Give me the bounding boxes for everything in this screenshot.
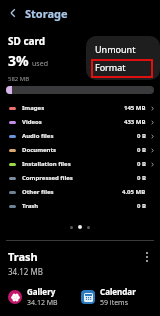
- staticText: Storage: [25, 6, 68, 21]
- button[interactable]: Compressed files: [0, 171, 160, 185]
- staticText: Format: [95, 61, 126, 73]
- button[interactable]: More options: [139, 249, 155, 265]
- button[interactable]: Back: [5, 5, 21, 21]
- staticText: Images: [22, 104, 45, 112]
- button[interactable]: Other files: [0, 185, 160, 199]
- staticText: used: [32, 59, 48, 69]
- staticText: 433 MB: [124, 118, 146, 126]
- staticText: Compressed files: [22, 174, 73, 182]
- staticText: Unmount: [95, 43, 136, 55]
- staticText: 34.12 MB: [8, 266, 43, 277]
- staticText: Videos: [22, 118, 42, 126]
- staticText: 0 B: [137, 160, 146, 168]
- button[interactable]: Documents: [0, 143, 160, 157]
- staticText: Trash: [22, 202, 39, 210]
- staticText: Gallery: [27, 286, 56, 297]
- staticText: 4.05 MB: [122, 188, 146, 196]
- button[interactable]: Gallery: [8, 286, 81, 308]
- button[interactable]: Format: [86, 58, 160, 76]
- button[interactable]: Trash: [0, 199, 160, 213]
- button[interactable]: Videos: [0, 115, 160, 129]
- staticText: Calendar: [100, 286, 136, 297]
- button[interactable]: Audio files: [0, 129, 160, 143]
- staticText: 0 B: [137, 202, 146, 210]
- staticText: Other files: [22, 188, 54, 196]
- staticText: Trash: [8, 249, 38, 264]
- staticText: 34.12 MB: [27, 298, 58, 308]
- button[interactable]: Images: [0, 101, 160, 115]
- button[interactable]: Calendar: [81, 286, 155, 308]
- staticText: Audio files: [22, 132, 54, 140]
- staticText: SD card: [8, 34, 46, 48]
- staticText: 0 B: [137, 146, 146, 154]
- button[interactable]: Unmount: [86, 40, 160, 58]
- button[interactable]: Installation files: [0, 157, 160, 171]
- staticText: 582 MB: [8, 75, 30, 83]
- staticText: 0 B: [137, 132, 146, 140]
- staticText: 3%: [8, 51, 29, 70]
- staticText: 145 MB: [124, 104, 146, 112]
- staticText: Installation files: [22, 160, 71, 168]
- staticText: Documents: [22, 146, 57, 154]
- staticText: 0 B: [137, 174, 146, 182]
- staticText: 59 items: [100, 298, 129, 308]
